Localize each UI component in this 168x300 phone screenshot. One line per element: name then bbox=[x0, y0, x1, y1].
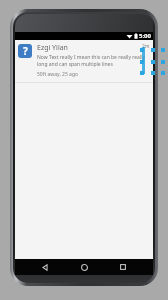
staticText: 2m bbox=[142, 43, 150, 50]
button[interactable]: Back bbox=[36, 259, 54, 275]
other: Unknown contact bbox=[18, 44, 32, 58]
staticText: 5:00 bbox=[139, 32, 151, 40]
button[interactable]: Unknown contact bbox=[15, 40, 153, 82]
button[interactable]: Home bbox=[75, 259, 93, 275]
staticText: Ezgi Yilan bbox=[37, 43, 142, 53]
staticText: ? bbox=[23, 44, 28, 58]
staticText: Now Text really I mean this can be reall… bbox=[37, 54, 150, 67]
staticText: 50ft away, 25 ago bbox=[37, 71, 79, 78]
button[interactable]: Recent apps bbox=[114, 259, 132, 275]
